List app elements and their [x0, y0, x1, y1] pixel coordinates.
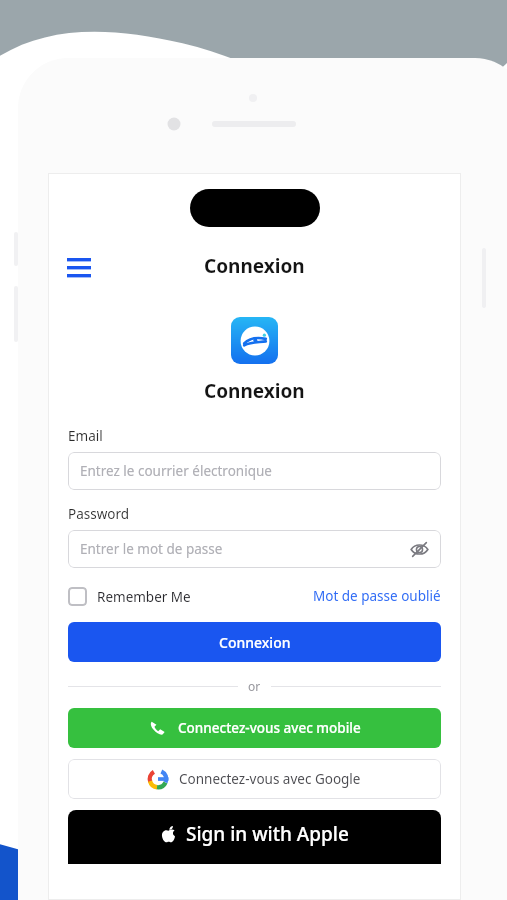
staticText: Connexion	[204, 378, 305, 404]
staticText: Connectez-vous avec Google	[179, 770, 361, 788]
button[interactable]: Mot de passe oublié	[313, 587, 441, 605]
staticText: Entrer le mot de passe	[80, 540, 223, 558]
button[interactable]: Remember Me	[68, 587, 191, 606]
button[interactable]: Entrez le courrier électronique	[68, 452, 441, 490]
button[interactable]: Connectez-vous avec mobile	[68, 708, 441, 748]
staticText: Remember Me	[97, 588, 191, 606]
button[interactable]: Show password	[408, 538, 430, 560]
staticText: Mot de passe oublié	[313, 587, 441, 605]
staticText: or	[248, 678, 261, 694]
button[interactable]: Sign in with Apple	[68, 810, 441, 864]
button[interactable]: Entrer le mot de passe	[68, 530, 441, 568]
staticText: Connexion	[219, 633, 291, 652]
staticText: Password	[68, 505, 130, 523]
staticText: Entrez le courrier électronique	[80, 462, 272, 480]
staticText: Sign in with Apple	[186, 821, 349, 847]
button[interactable]: Connexion	[68, 622, 441, 662]
staticText: Email	[68, 427, 103, 445]
staticText: Connexion	[204, 253, 305, 279]
staticText: Connectez-vous avec mobile	[178, 719, 361, 737]
button[interactable]: Connectez-vous avec Google	[68, 759, 441, 799]
button[interactable]: Menu	[62, 249, 96, 283]
